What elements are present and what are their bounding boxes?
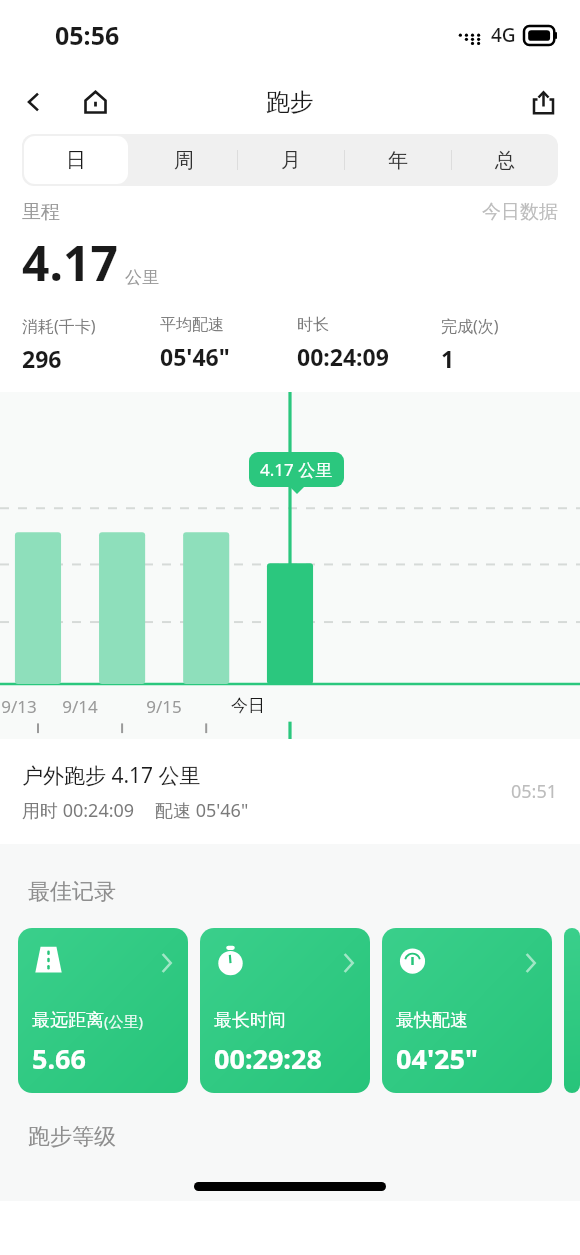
- button[interactable]: Home: [72, 79, 118, 125]
- button[interactable]: 年: [344, 134, 451, 186]
- button[interactable]: 最快配速: [382, 928, 552, 1093]
- staticText: 05'46": [160, 341, 230, 372]
- button[interactable]: 最远距离: [18, 928, 188, 1093]
- staticText: 4.17 公里: [260, 458, 333, 481]
- button[interactable]: Share: [520, 79, 566, 125]
- staticText: 总: [495, 148, 515, 173]
- button[interactable]: 日: [22, 134, 130, 186]
- staticText: 户外跑步 4.17 公里: [22, 761, 201, 790]
- staticText: 9/13: [1, 695, 37, 718]
- staticText: 日: [66, 148, 86, 173]
- staticText: 今日: [231, 695, 265, 716]
- staticText: 跑步等级: [28, 1123, 116, 1151]
- staticText: (公里): [104, 1011, 144, 1031]
- staticText: 00:29:28: [214, 1040, 322, 1077]
- staticText: 年: [388, 148, 408, 173]
- staticText: 配速 05'46": [155, 798, 249, 823]
- button[interactable]: 户外跑步 4.17 公里: [0, 739, 580, 844]
- staticText: 9/15: [146, 695, 182, 718]
- staticText: 5.66: [32, 1040, 86, 1077]
- staticText: 296: [22, 343, 62, 374]
- staticText: 最快配速: [396, 1009, 468, 1032]
- staticText: 跑步: [266, 87, 314, 117]
- staticText: 4.17: [22, 230, 118, 295]
- staticText: 最佳记录: [28, 878, 116, 906]
- staticText: 最长时间: [214, 1009, 286, 1032]
- staticText: 月: [281, 148, 301, 173]
- staticText: 周: [174, 148, 194, 173]
- staticText: 里程: [22, 200, 60, 224]
- staticText: 05:51: [511, 779, 558, 804]
- button[interactable]: 最长时间: [200, 928, 370, 1093]
- button[interactable]: 总: [451, 134, 558, 186]
- button[interactable]: 周: [130, 134, 237, 186]
- staticText: 时长: [297, 315, 329, 335]
- staticText: 平均配速: [160, 315, 224, 335]
- staticText: 00:24:09: [297, 341, 389, 372]
- staticText: 用时 00:24:09: [22, 798, 135, 823]
- staticText: 最远距离: [32, 1009, 104, 1032]
- staticText: 4G: [491, 22, 516, 48]
- staticText: 1: [441, 343, 455, 374]
- button[interactable]: Back: [12, 80, 56, 124]
- staticText: 公里: [125, 267, 159, 288]
- staticText: 05:56: [55, 18, 120, 52]
- staticText: 完成(次): [441, 315, 499, 337]
- staticText: 消耗(千卡): [22, 315, 96, 337]
- button[interactable]: [564, 928, 580, 1093]
- button[interactable]: 月: [237, 134, 344, 186]
- staticText: 今日数据: [482, 200, 558, 224]
- staticText: 04'25": [396, 1040, 478, 1077]
- staticText: 9/14: [62, 695, 98, 718]
